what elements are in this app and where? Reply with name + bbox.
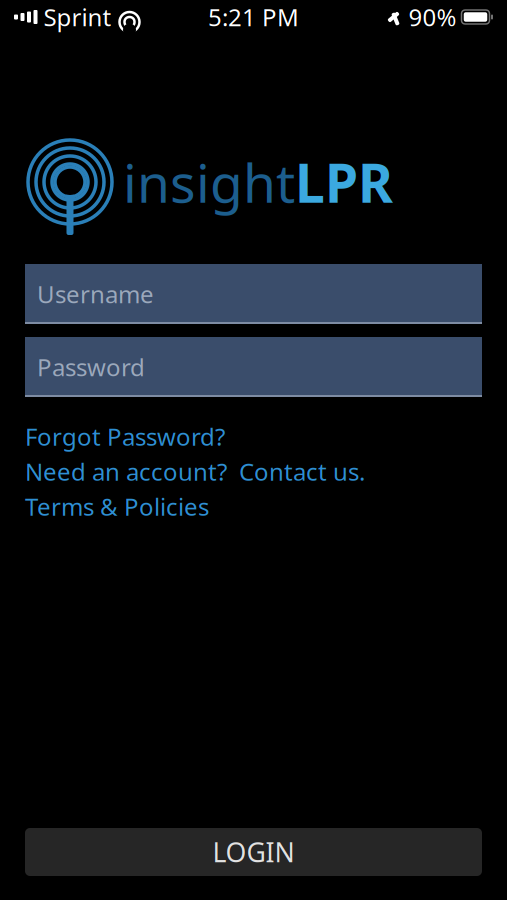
staticText: LOGIN — [212, 834, 294, 870]
staticText: insight — [123, 147, 295, 217]
staticText: Username — [37, 278, 154, 310]
staticText: 5:21 PM — [208, 1, 299, 33]
button[interactable]: Password — [25, 337, 482, 397]
staticText: Terms & Policies — [25, 491, 209, 522]
button[interactable]: Need an account? Contact us. — [25, 454, 482, 489]
button[interactable]: Username — [25, 264, 482, 324]
staticText: LPR — [295, 147, 393, 217]
button[interactable]: Terms & Policies — [25, 489, 482, 524]
staticText: Forgot Password? — [25, 421, 225, 452]
staticText: 90% — [408, 1, 456, 33]
staticText: Need an account? Contact us. — [25, 456, 365, 487]
button[interactable]: Forgot Password? — [25, 419, 482, 454]
staticText: Password — [37, 351, 145, 383]
button[interactable]: LOGIN — [25, 828, 482, 876]
staticText: Sprint — [43, 1, 111, 33]
